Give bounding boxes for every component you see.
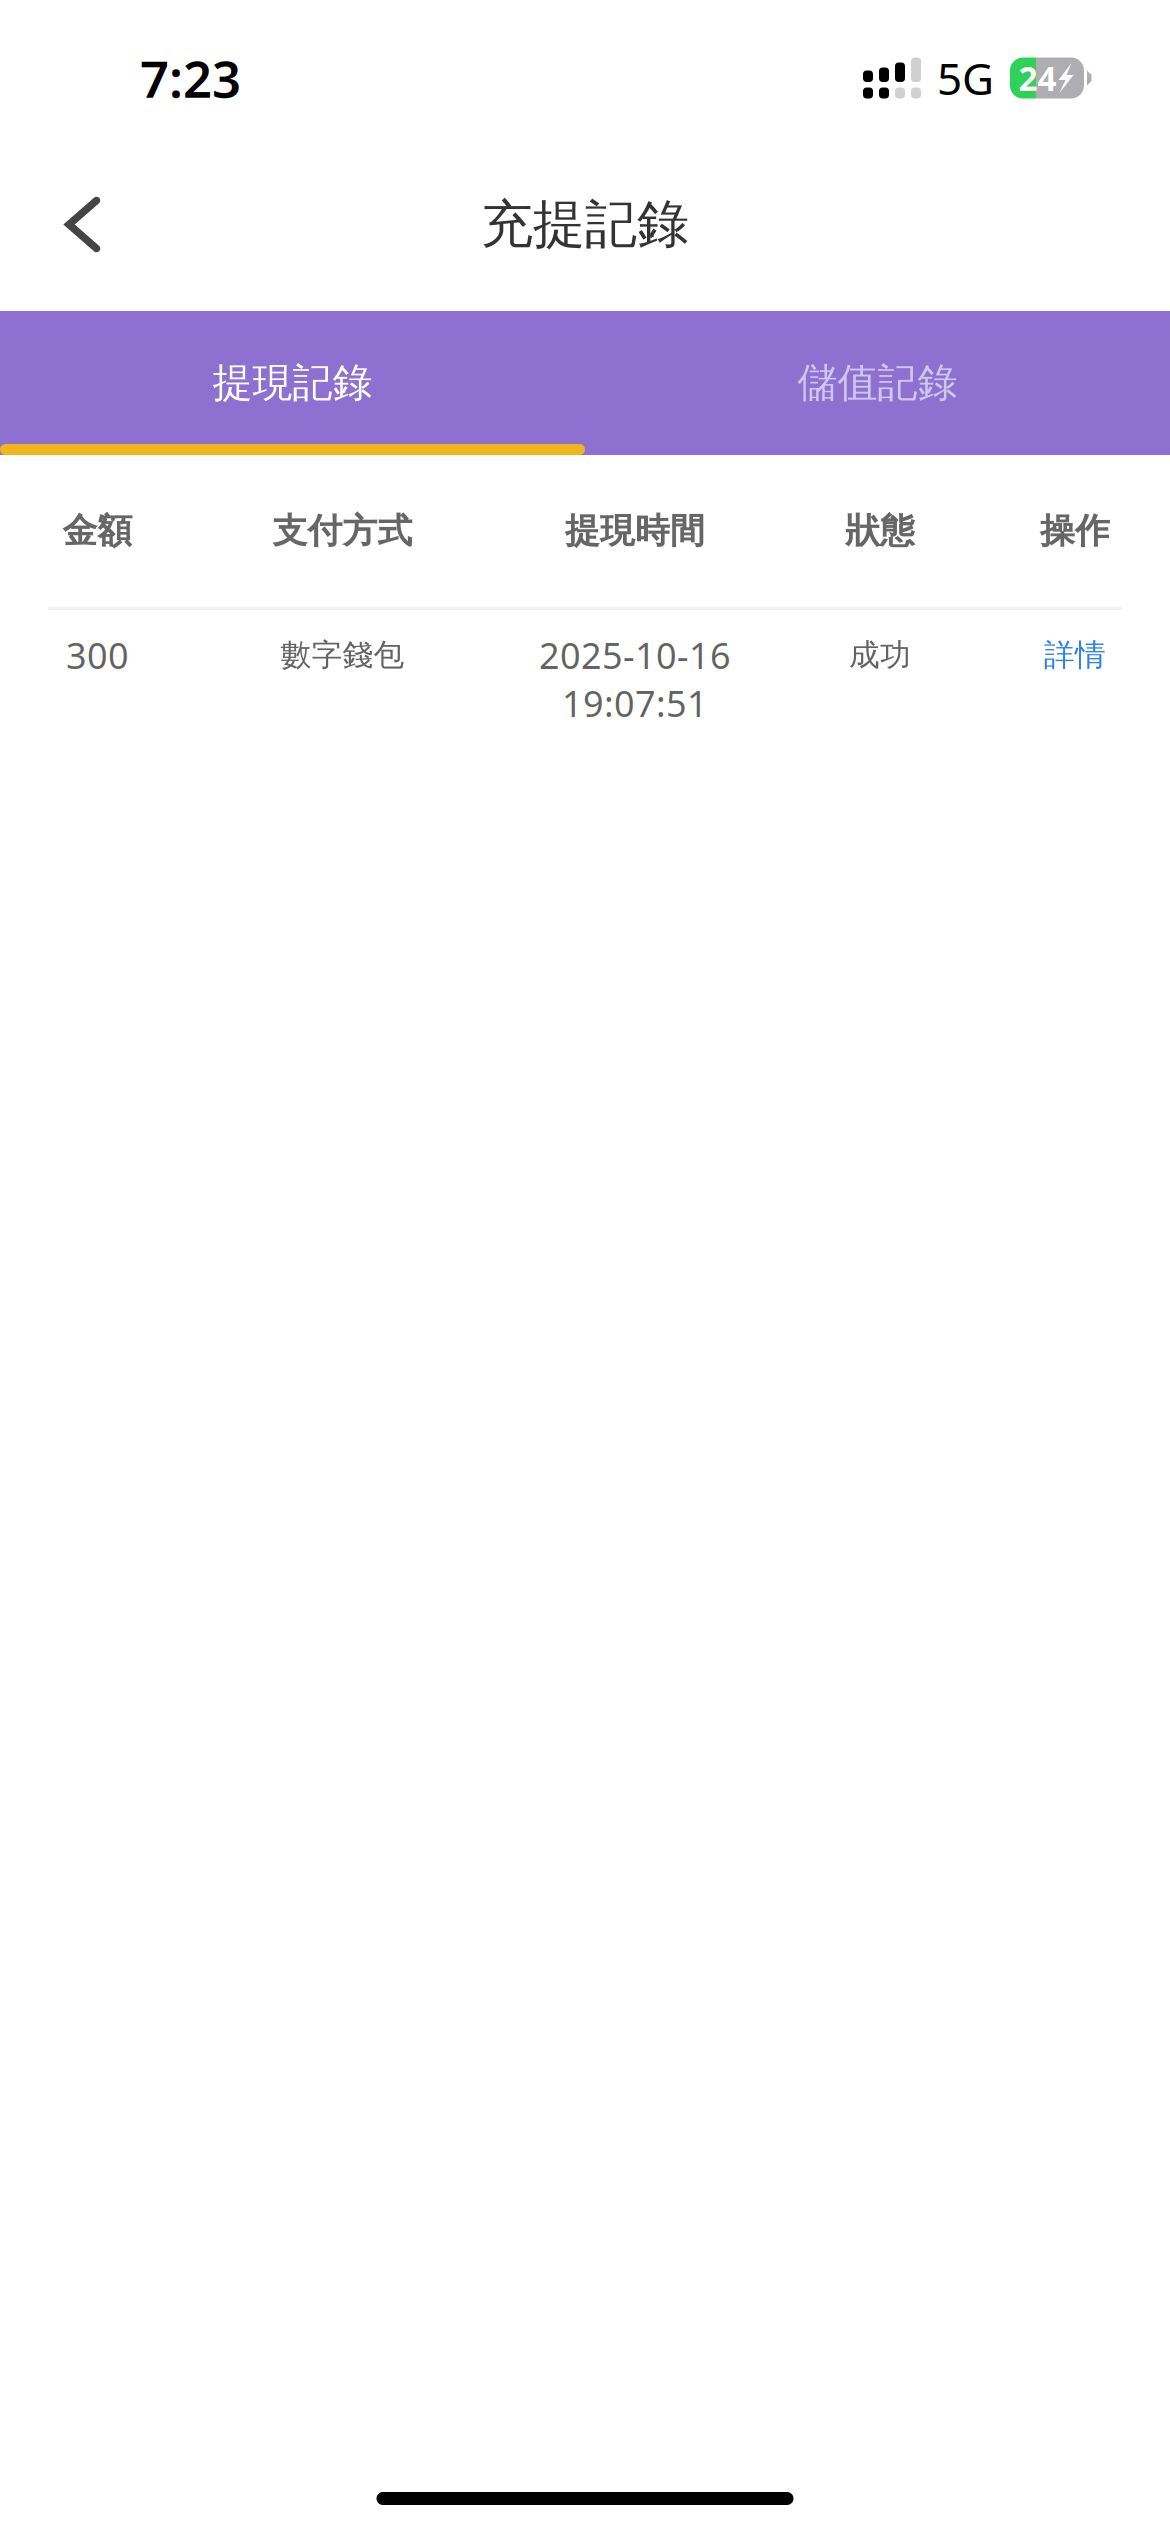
staticText: 成功 — [849, 636, 911, 674]
staticText: 支付方式 — [272, 510, 412, 552]
staticText: 詳情 — [1044, 636, 1106, 674]
staticText: 狀態 — [845, 510, 915, 552]
staticText: 提現時間 — [565, 510, 705, 552]
staticText: 7:23 — [140, 44, 241, 112]
staticText: 提現記錄 — [212, 358, 372, 407]
staticText: 19:07:51 — [562, 679, 708, 727]
button[interactable]: Back — [0, 168, 165, 280]
staticText: 儲值記錄 — [797, 358, 957, 407]
button[interactable]: 儲值記錄 — [585, 311, 1170, 455]
staticText: 5G — [937, 49, 994, 107]
staticText: 操作 — [1040, 510, 1110, 552]
staticText: 充提記錄 — [481, 193, 689, 256]
staticText: 數字錢包 — [280, 636, 404, 674]
staticText: 300 — [66, 631, 129, 679]
staticText: 2025-10-16 — [539, 631, 731, 679]
staticText: 金額 — [62, 510, 132, 552]
button[interactable]: 詳情 — [980, 610, 1170, 675]
staticText: 24 — [1018, 56, 1056, 100]
button[interactable]: 提現記錄 — [0, 311, 585, 455]
